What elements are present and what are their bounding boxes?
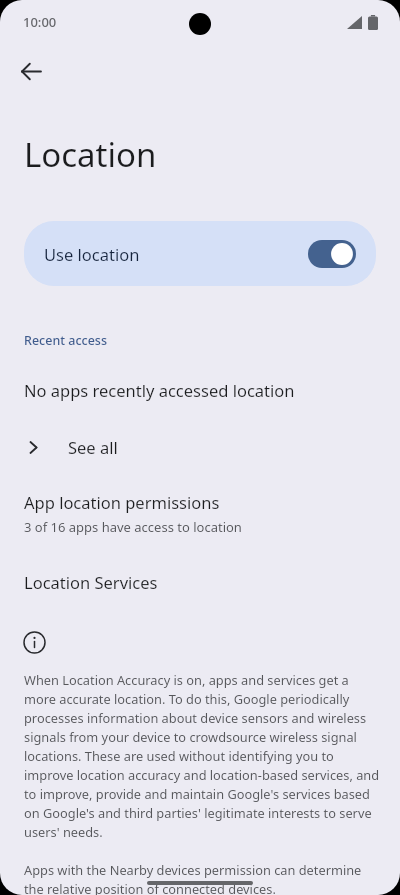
staticText: Use location bbox=[44, 243, 308, 265]
staticText: Location Services bbox=[24, 571, 158, 593]
staticText: 3 of 16 apps have access to location bbox=[24, 518, 242, 536]
button[interactable]: Use location bbox=[24, 221, 376, 286]
other: Information bbox=[23, 631, 46, 654]
staticText: App location permissions bbox=[24, 491, 220, 513]
button[interactable]: App location permissions bbox=[0, 489, 400, 540]
staticText: 10:00 bbox=[23, 13, 57, 31]
staticText: When Location Accuracy is on, apps and s… bbox=[24, 671, 380, 841]
button[interactable]: See all bbox=[0, 425, 400, 469]
button[interactable]: Location Services bbox=[0, 569, 400, 595]
staticText: Location bbox=[24, 132, 157, 177]
staticText: Apps with the Nearby devices permission … bbox=[24, 861, 380, 895]
staticText: See all bbox=[68, 436, 118, 458]
staticText: Recent access bbox=[24, 332, 108, 349]
staticText: No apps recently accessed location bbox=[24, 379, 295, 401]
button[interactable]: Back bbox=[12, 52, 50, 90]
